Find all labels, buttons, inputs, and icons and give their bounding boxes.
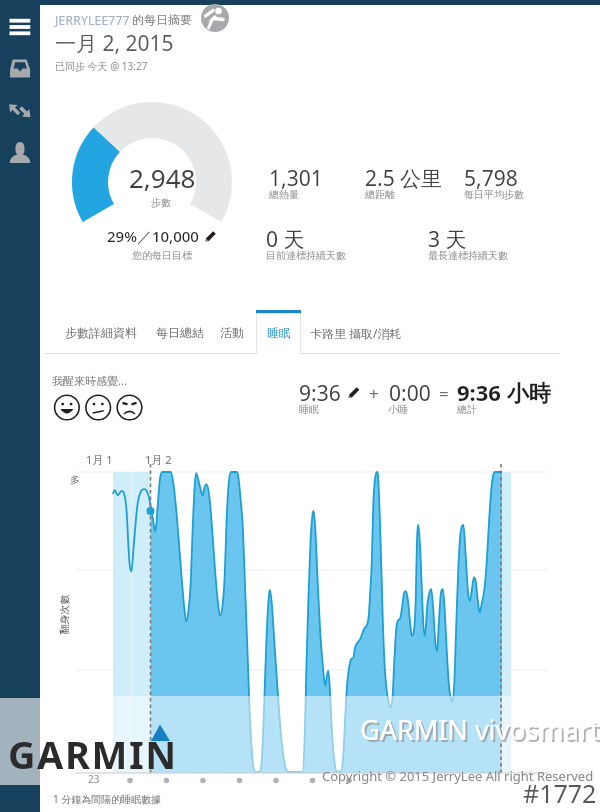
staticText: 步數詳細資料 xyxy=(65,325,137,340)
staticText: GARMIN vivosmart xyxy=(362,713,600,750)
staticText: 每日平均步數 xyxy=(464,188,524,201)
button[interactable]: Menu xyxy=(7,16,33,38)
staticText: JERRYLEE777 xyxy=(55,12,130,28)
staticText: 已同步 今天 @ 13:27 xyxy=(55,59,148,73)
staticText: 最長達標持續天數 xyxy=(428,249,508,262)
staticText: 翻身次數 xyxy=(57,594,70,634)
staticText: 目前達標持續天數 xyxy=(266,249,346,262)
button[interactable]: 活動 xyxy=(210,310,254,355)
staticText: 1 分鐘為間隔的睡眠數據 xyxy=(53,792,162,806)
staticText: 1月 1 xyxy=(86,452,113,467)
staticText: 2,948 xyxy=(129,160,196,195)
staticText: 活動 xyxy=(220,325,244,340)
staticText: 23 xyxy=(88,772,100,786)
staticText: GARMIN xyxy=(8,728,178,780)
staticText: 9:36 小時 xyxy=(457,377,551,407)
staticText: #1772 xyxy=(523,776,597,810)
staticText: 29%／10,000 xyxy=(107,226,199,246)
staticText: Copyright © 2015 JerryLee All right Rese… xyxy=(322,767,594,785)
staticText: 0 天 xyxy=(266,225,305,254)
staticText: 5,798 xyxy=(464,164,518,193)
staticText: 2.5 公里 xyxy=(365,164,443,193)
staticText: 步數 xyxy=(151,196,171,209)
staticText: 您的每日目標 xyxy=(132,249,192,262)
button[interactable]: Sync xyxy=(5,100,33,122)
staticText: 3 天 xyxy=(428,225,467,254)
staticText: 9:36 xyxy=(299,379,341,408)
staticText: 總距離 xyxy=(365,188,395,201)
button[interactable]: 每日總結 xyxy=(146,310,214,355)
staticText: GARMIN vivosmart xyxy=(360,711,600,748)
staticText: 卡路里 攝取/消耗 xyxy=(310,325,402,341)
staticText: 睡眠 xyxy=(267,325,291,340)
button[interactable]: 睡眠 xyxy=(257,310,301,355)
staticText: 總熱量 xyxy=(269,188,299,201)
staticText: 0:00 xyxy=(389,379,431,408)
staticText: 多 xyxy=(70,473,80,486)
button[interactable]: Inbox xyxy=(8,57,32,79)
staticText: 一月 2, 2015 xyxy=(55,29,174,58)
staticText: 1,301 xyxy=(269,164,323,193)
staticText: 每日總結 xyxy=(156,325,204,340)
button[interactable]: 步數詳細資料 xyxy=(55,310,147,355)
button[interactable]: Profile xyxy=(8,140,32,166)
staticText: 總計 xyxy=(457,403,477,416)
staticText: 小睡 xyxy=(388,403,408,416)
staticText: 睡眠 xyxy=(299,403,319,416)
staticText: 我醒來時感覺... xyxy=(52,373,127,388)
staticText: + xyxy=(369,382,379,405)
staticText: = xyxy=(439,382,449,405)
button[interactable]: 卡路里 攝取/消耗 xyxy=(300,310,412,355)
staticText: 1月 2 xyxy=(145,452,172,467)
staticText: 的每日摘要 xyxy=(132,12,192,27)
